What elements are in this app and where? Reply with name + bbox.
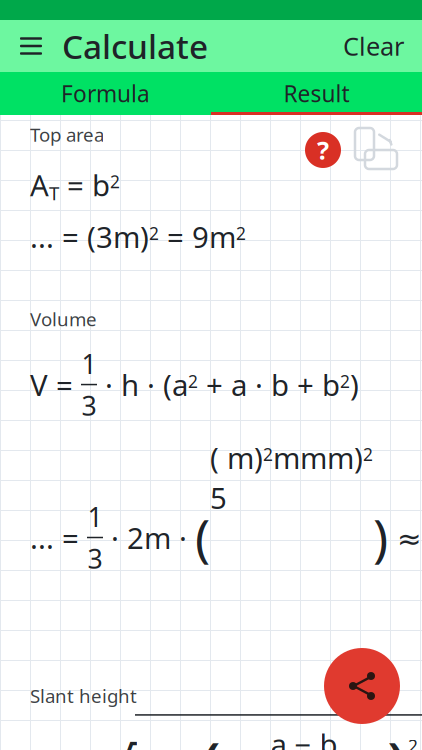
button[interactable]: Formula <box>0 72 211 115</box>
staticText: √ <box>91 733 137 750</box>
staticText: m <box>113 217 140 257</box>
staticText: 2 <box>340 369 350 393</box>
staticText: Top area <box>30 122 104 147</box>
button[interactable]: Clear <box>325 17 422 75</box>
button[interactable]: Menu <box>6 21 56 71</box>
staticText: 1 <box>87 498 102 535</box>
staticText: 2 <box>149 222 159 245</box>
staticText: Slant height <box>30 683 137 708</box>
staticText: T <box>49 180 59 206</box>
staticText: h <box>121 365 139 405</box>
staticText: · <box>97 365 121 405</box>
staticText: Calculate <box>62 24 208 68</box>
staticText: A <box>30 165 49 205</box>
staticText: 2 <box>408 734 418 750</box>
staticText: ) <box>387 719 408 750</box>
staticText: h <box>30 744 48 750</box>
staticText: m <box>227 438 254 478</box>
staticText: 2 <box>110 170 120 193</box>
staticText: ? <box>317 133 329 167</box>
staticText: 2 <box>236 222 246 245</box>
staticText: 3 <box>87 540 102 577</box>
staticText: + <box>167 746 200 750</box>
staticText: m <box>209 217 236 257</box>
staticText: 2 <box>363 442 373 466</box>
staticText: 3 <box>81 387 96 424</box>
staticText: m <box>273 438 300 478</box>
staticText: ) <box>254 438 263 478</box>
staticText: b <box>271 365 289 405</box>
staticText: Result <box>283 78 349 108</box>
staticText: ) <box>350 365 359 405</box>
staticText: (5 <box>210 438 227 517</box>
staticText: m <box>327 438 354 478</box>
staticText: ( <box>195 503 210 572</box>
staticText: + <box>289 365 322 405</box>
staticText: ( <box>200 719 221 750</box>
staticText: h <box>139 746 157 750</box>
staticText: ) <box>140 217 149 257</box>
staticText: Clear <box>343 29 404 63</box>
staticText: a <box>231 365 247 405</box>
staticText: Volume <box>30 307 97 331</box>
staticText: b <box>319 724 337 750</box>
staticText: m <box>300 438 327 478</box>
staticText: = 9 <box>159 217 209 257</box>
staticText: V <box>30 365 48 405</box>
staticText: ) <box>354 438 363 478</box>
staticText: ... = (3 <box>30 217 113 257</box>
staticText: · ( <box>139 365 172 405</box>
staticText: a <box>172 365 188 405</box>
staticText: · <box>247 365 271 405</box>
button[interactable]: Result <box>211 72 422 115</box>
staticText: 2 <box>263 442 273 466</box>
staticText: = <box>59 165 92 205</box>
staticText: a <box>270 724 286 750</box>
staticText: − <box>286 724 319 750</box>
staticText: ≈ 3 <box>388 517 422 557</box>
staticText: 2 <box>188 369 198 393</box>
staticText: ... = <box>30 517 87 557</box>
staticText: b <box>322 365 340 405</box>
staticText: ) <box>373 503 388 572</box>
staticText: m <box>144 517 171 557</box>
staticText: b <box>92 165 110 205</box>
button[interactable]: Share <box>324 648 400 724</box>
button[interactable]: Calculate <box>56 16 208 76</box>
staticText: = <box>58 744 91 750</box>
staticText: = <box>48 365 81 405</box>
staticText: + <box>198 365 231 405</box>
staticText: · 2 <box>103 517 144 557</box>
staticText: 1 <box>81 345 96 382</box>
button[interactable]: Help <box>305 132 341 168</box>
button[interactable]: Rotate device <box>355 128 399 172</box>
staticText: Formula <box>61 78 150 108</box>
staticText: · <box>171 517 195 557</box>
